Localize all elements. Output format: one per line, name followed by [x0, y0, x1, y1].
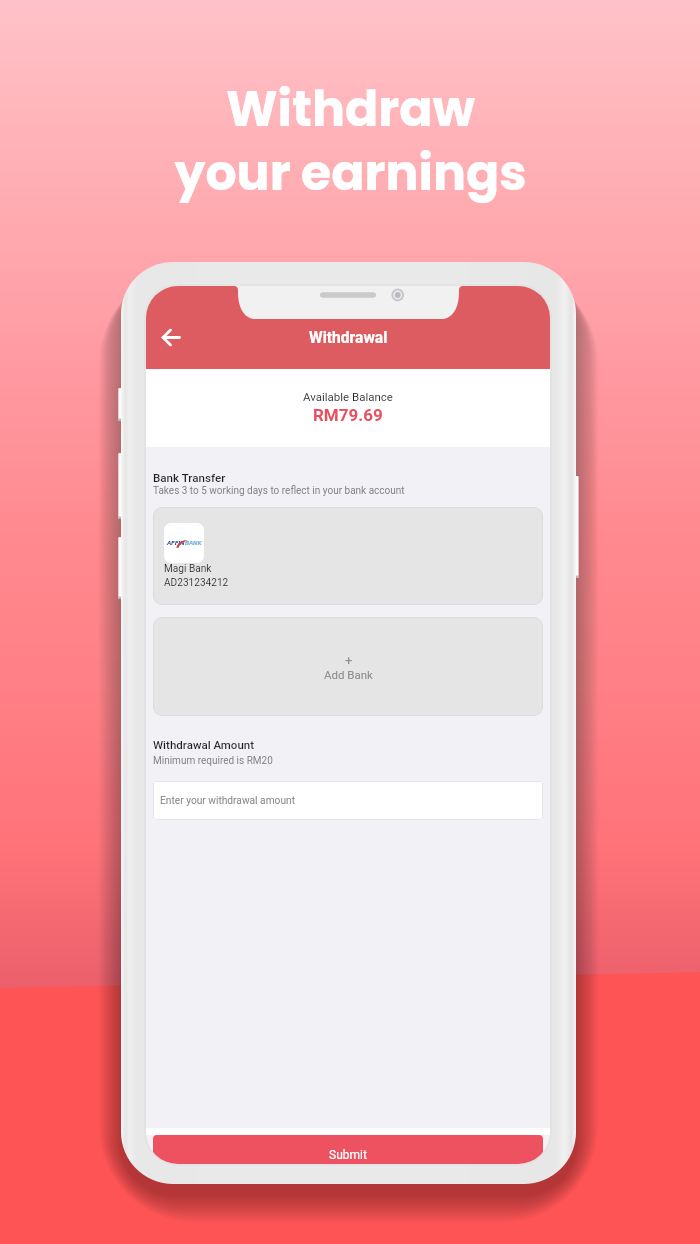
button[interactable]: Submit: [153, 1135, 543, 1164]
staticText: Withdrawal: [309, 329, 388, 347]
staticText: Available Balance: [303, 390, 393, 403]
button[interactable]: Back: [151, 318, 189, 356]
staticText: RM79.69: [313, 405, 383, 425]
staticText: Add Bank: [324, 668, 373, 681]
staticText: your earnings: [174, 139, 527, 208]
staticText: Magi Bank: [164, 563, 212, 575]
staticText: Withdraw: [226, 75, 475, 144]
staticText: AFFIN: [167, 540, 185, 547]
staticText: Bank Transfer: [153, 471, 226, 485]
button[interactable]: Enter your withdrawal amount: [153, 781, 543, 820]
staticText: +: [345, 653, 353, 668]
button[interactable]: AFFIN: [153, 507, 543, 605]
button[interactable]: +: [153, 617, 543, 716]
staticText: Submit: [329, 1148, 367, 1162]
staticText: AD231234212: [164, 577, 229, 589]
staticText: Takes 3 to 5 working days to reflect in …: [153, 485, 405, 497]
staticText: Enter your withdrawal amount: [160, 795, 295, 807]
staticText: BANK: [185, 540, 202, 547]
staticText: Minimum required is RM20: [153, 755, 273, 767]
staticText: Withdrawal Amount: [153, 738, 255, 751]
